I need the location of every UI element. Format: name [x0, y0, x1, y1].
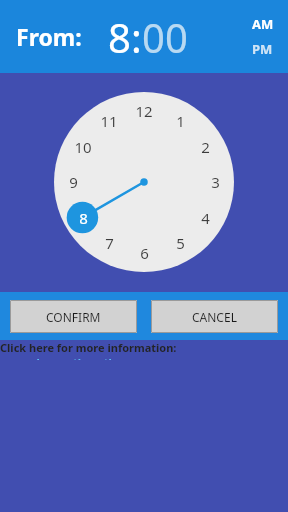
staticText: 8 — [79, 208, 88, 228]
button[interactable]: 5 — [167, 232, 193, 254]
staticText: 11 — [100, 111, 118, 131]
button[interactable]: 4 — [192, 207, 218, 229]
button[interactable]: 11 — [96, 110, 122, 132]
button[interactable]: 3 — [202, 171, 228, 193]
staticText: 6 — [140, 243, 149, 263]
button[interactable]: AM — [252, 15, 274, 33]
button[interactable]: 12 — [131, 100, 157, 122]
staticText: Click here for more information: www.sky… — [0, 340, 288, 360]
staticText: From: — [16, 21, 82, 52]
staticText: 9 — [69, 172, 78, 192]
staticText: 7 — [105, 233, 114, 253]
button[interactable]: PM — [252, 40, 273, 58]
button[interactable]: CANCEL — [151, 300, 278, 333]
staticText: 1 — [176, 111, 185, 131]
staticText: 2 — [201, 137, 210, 157]
staticText: CONFIRM — [46, 309, 101, 325]
staticText: : — [131, 10, 142, 64]
button[interactable]: 8 — [108, 10, 131, 64]
button[interactable]: 1 — [167, 110, 193, 132]
button[interactable]: 2 — [192, 136, 218, 158]
staticText: 4 — [201, 208, 210, 228]
button[interactable]: 8 — [70, 207, 96, 229]
button[interactable]: 00 — [142, 10, 188, 64]
staticText: 12 — [135, 101, 153, 121]
button[interactable]: CONFIRM — [10, 300, 137, 333]
staticText: 5 — [176, 233, 185, 253]
button[interactable]: 9 — [60, 171, 86, 193]
button[interactable]: 10 — [70, 136, 96, 158]
button[interactable]: 7 — [96, 232, 122, 254]
staticText: 3 — [211, 172, 220, 192]
staticText: 10 — [74, 137, 92, 157]
button[interactable]: 6 — [131, 242, 157, 264]
button[interactable]: Click here for more information: www.sky… — [0, 340, 288, 360]
staticText: CANCEL — [192, 309, 237, 325]
